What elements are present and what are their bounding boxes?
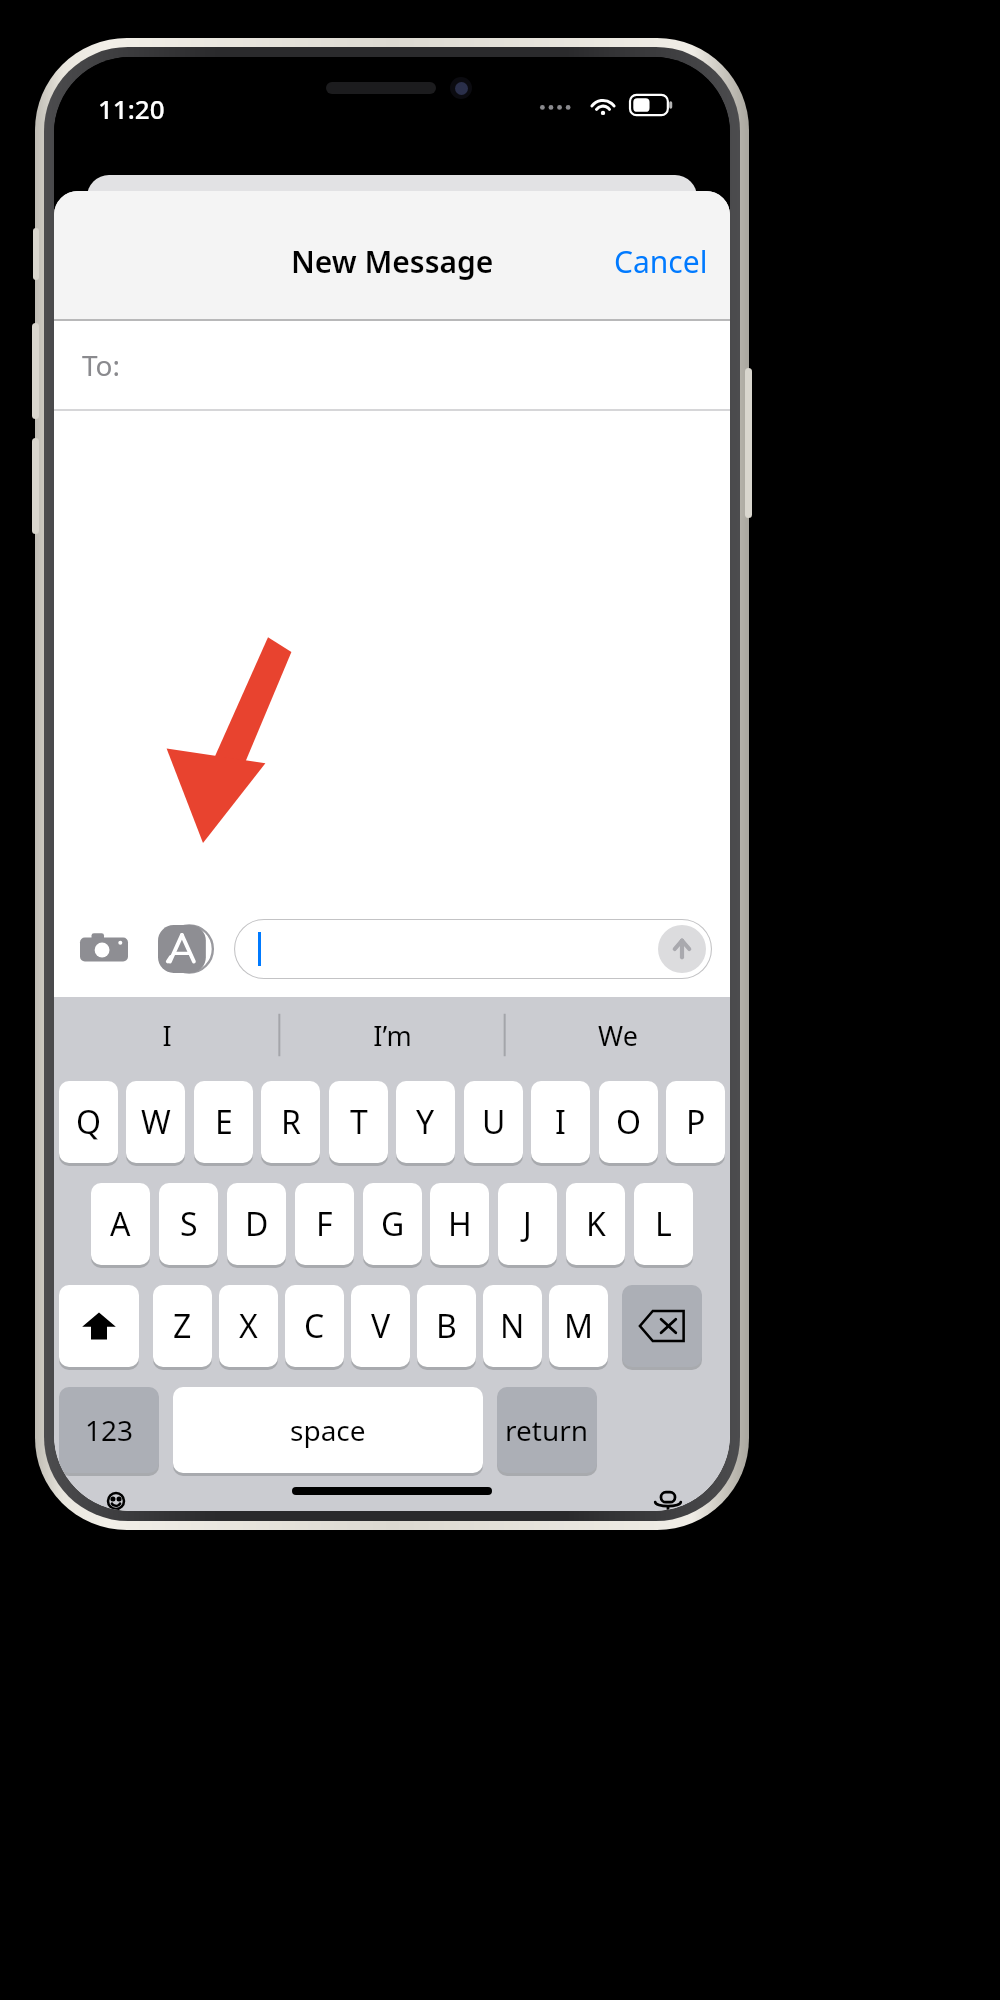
staticText: B <box>436 1304 457 1348</box>
button[interactable]: I <box>54 997 280 1073</box>
staticText: V <box>371 1304 391 1348</box>
button[interactable]: F <box>295 1183 354 1269</box>
staticText: We <box>598 1017 638 1054</box>
staticText: return <box>505 1411 589 1449</box>
button[interactable] <box>59 1285 139 1371</box>
button[interactable]: P <box>666 1081 725 1167</box>
staticText: To: <box>82 346 121 384</box>
staticText: New Message <box>291 241 494 282</box>
staticText: W <box>141 1100 171 1144</box>
button[interactable]: Emoji keyboard <box>88 1491 144 1511</box>
button[interactable]: L <box>634 1183 693 1269</box>
button[interactable]: O <box>599 1081 658 1167</box>
button[interactable]: return <box>497 1387 597 1477</box>
staticText: I <box>555 1100 566 1144</box>
staticText: Q <box>76 1100 101 1144</box>
button[interactable]: K <box>566 1183 625 1269</box>
staticText: O <box>616 1100 641 1144</box>
button[interactable] <box>622 1285 702 1371</box>
staticText: H <box>448 1202 472 1246</box>
staticText: U <box>482 1100 506 1144</box>
button[interactable]: I <box>531 1081 590 1167</box>
staticText: S <box>180 1202 198 1246</box>
staticText: Y <box>416 1100 435 1144</box>
button[interactable]: Cancel <box>592 227 730 296</box>
button[interactable]: X <box>219 1285 278 1371</box>
staticText: D <box>245 1202 269 1246</box>
button[interactable]: J <box>498 1183 557 1269</box>
button[interactable]: H <box>430 1183 489 1269</box>
button[interactable]: Z <box>153 1285 212 1371</box>
staticText: M <box>564 1304 594 1348</box>
staticText: K <box>586 1202 606 1246</box>
button[interactable]: Dictation <box>640 1491 696 1511</box>
button[interactable]: space <box>173 1387 483 1477</box>
button[interactable]: W <box>126 1081 185 1167</box>
staticText: F <box>316 1202 333 1246</box>
staticText: C <box>304 1304 325 1348</box>
button[interactable]: T <box>329 1081 388 1167</box>
staticText: I <box>162 1017 172 1054</box>
staticText: P <box>686 1100 706 1144</box>
staticText: R <box>281 1100 301 1144</box>
staticText: G <box>381 1202 405 1246</box>
button[interactable]: A <box>91 1183 150 1269</box>
button[interactable]: Camera <box>72 917 136 981</box>
button[interactable]: N <box>483 1285 542 1371</box>
button[interactable]: U <box>464 1081 523 1167</box>
button[interactable]: Send <box>234 919 712 979</box>
button[interactable]: We <box>505 997 730 1073</box>
button[interactable]: R <box>261 1081 320 1167</box>
button[interactable]: S <box>159 1183 218 1269</box>
staticText: T <box>350 1100 368 1144</box>
staticText: X <box>239 1304 258 1348</box>
staticText: Cancel <box>614 241 708 282</box>
button[interactable]: E <box>194 1081 253 1167</box>
staticText: I’m <box>373 1017 412 1054</box>
button[interactable]: M <box>549 1285 608 1371</box>
button[interactable]: App Store apps <box>152 917 216 981</box>
staticText: L <box>655 1202 672 1246</box>
staticText: J <box>523 1202 532 1246</box>
button[interactable]: Y <box>396 1081 455 1167</box>
button[interactable]: I’m <box>280 997 505 1073</box>
staticText: A <box>110 1202 131 1246</box>
button[interactable]: 123 <box>59 1387 159 1477</box>
staticText: space <box>290 1411 366 1449</box>
staticText: N <box>500 1304 525 1348</box>
button[interactable]: Send <box>658 925 706 973</box>
button[interactable]: D <box>227 1183 286 1269</box>
staticText: 11:20 <box>98 91 165 126</box>
button[interactable]: G <box>363 1183 422 1269</box>
button[interactable]: C <box>285 1285 344 1371</box>
button[interactable]: To: <box>54 321 730 409</box>
staticText: Z <box>173 1304 192 1348</box>
button[interactable]: V <box>351 1285 410 1371</box>
staticText: E <box>215 1100 233 1144</box>
button[interactable]: Q <box>59 1081 118 1167</box>
staticText: 123 <box>85 1411 134 1449</box>
button[interactable]: B <box>417 1285 476 1371</box>
